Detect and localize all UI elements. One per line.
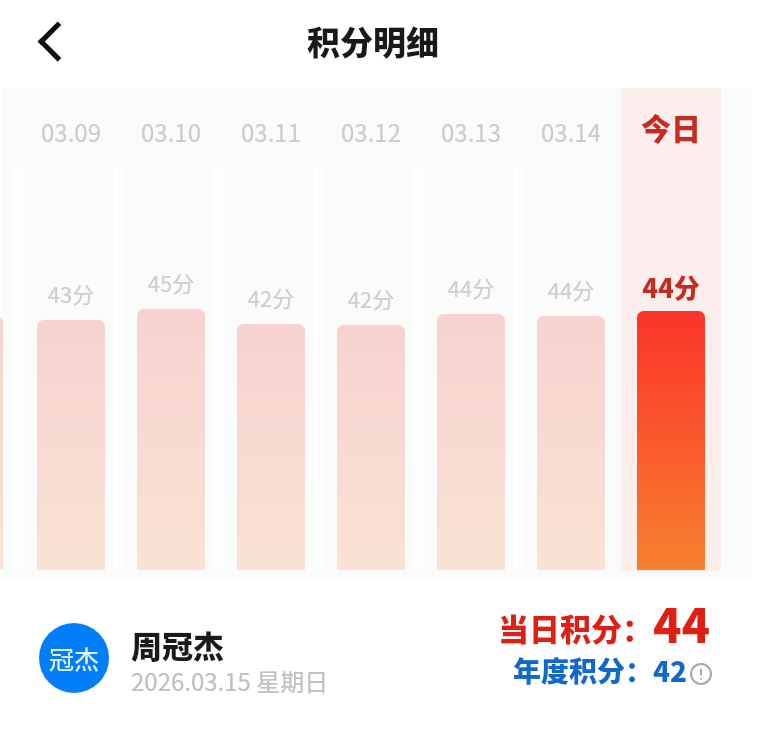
staticText: 03.11: [221, 114, 321, 149]
staticText: 冠杰: [49, 640, 100, 676]
button[interactable]: 冠杰: [39, 623, 109, 693]
staticText: 44: [653, 588, 711, 656]
staticText: 42分: [221, 281, 321, 313]
staticText: 积分明细: [307, 17, 439, 65]
staticText: 年度积分：42: [513, 650, 688, 691]
staticText: 44分: [421, 271, 521, 303]
staticText: 今日: [621, 105, 721, 148]
button[interactable]: Info: [690, 663, 712, 685]
button[interactable]: Back: [6, 11, 70, 75]
staticText: 44分: [521, 273, 621, 305]
staticText: 42分: [321, 282, 421, 314]
staticText: 2026.03.15 星期日: [131, 663, 329, 698]
staticText: 03.14: [521, 114, 621, 149]
staticText: 03.13: [421, 114, 521, 149]
staticText: 周冠杰: [131, 622, 224, 667]
staticText: 44分: [621, 268, 721, 306]
staticText: 43分: [21, 277, 121, 309]
staticText: 03.09: [21, 114, 121, 149]
staticText: 03.10: [121, 114, 221, 149]
staticText: 45分: [121, 266, 221, 298]
staticText: 当日积分：: [498, 605, 653, 650]
staticText: 03.12: [321, 114, 421, 149]
